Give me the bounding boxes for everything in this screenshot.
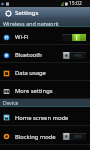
staticText: Home screen mode (15, 114, 69, 122)
staticText: 15:02 (69, 0, 82, 7)
staticText: Data usage (15, 69, 46, 77)
staticText: Device (3, 100, 19, 107)
staticText: Blocking mode (15, 133, 56, 141)
button[interactable]: Toggle off (62, 132, 86, 141)
button[interactable]: Blocking mode (0, 126, 90, 145)
button[interactable]: Toggle off (62, 51, 86, 60)
button[interactable]: Wi-Fi (0, 27, 90, 45)
button[interactable]: Bluetooth (0, 45, 90, 63)
button[interactable]: More settings (0, 81, 90, 99)
staticText: Wi-Fi (15, 33, 29, 41)
button[interactable]: Toggle on (62, 33, 86, 42)
staticText: Settings (15, 9, 39, 17)
staticText: More settings (15, 87, 53, 95)
staticText: Wireless and network (3, 20, 59, 27)
staticText: Bluetooth (15, 51, 42, 59)
button[interactable]: Data usage (0, 63, 90, 81)
button[interactable]: Home screen mode (0, 107, 90, 126)
